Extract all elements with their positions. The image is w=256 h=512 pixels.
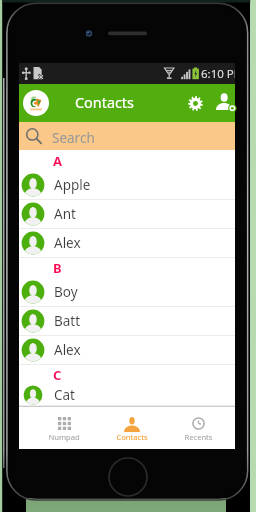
button[interactable]: Recents bbox=[165, 407, 232, 449]
button[interactable]: Numpad bbox=[30, 407, 98, 449]
staticText: Contacts bbox=[75, 93, 134, 113]
button[interactable]: App logo bbox=[23, 90, 49, 116]
button[interactable]: Settings bbox=[183, 91, 208, 116]
staticText: Contacts bbox=[116, 432, 148, 442]
staticText: Alex bbox=[54, 234, 81, 252]
button[interactable]: Alex bbox=[19, 336, 235, 365]
staticText: Ant bbox=[54, 205, 76, 223]
staticText: Numpad bbox=[48, 432, 80, 442]
button[interactable]: Ant bbox=[19, 200, 235, 229]
staticText: A bbox=[53, 152, 62, 170]
staticText: Apple bbox=[54, 176, 91, 194]
staticText: Search bbox=[52, 129, 95, 147]
staticText: C bbox=[53, 366, 62, 384]
button[interactable]: Batt bbox=[19, 307, 235, 336]
button[interactable]: Alex bbox=[19, 229, 235, 258]
button[interactable]: Apple bbox=[19, 171, 235, 200]
staticText: B bbox=[53, 259, 62, 277]
button[interactable]: Search bbox=[19, 122, 235, 150]
button[interactable]: Boy bbox=[19, 278, 235, 307]
staticText: Batt bbox=[54, 312, 81, 330]
button[interactable]: Contacts bbox=[98, 407, 165, 449]
staticText: Cat bbox=[54, 386, 75, 404]
staticText: Alex bbox=[54, 341, 81, 359]
button[interactable]: Cat bbox=[19, 385, 235, 406]
staticText: Boy bbox=[54, 283, 78, 301]
staticText: Recents bbox=[184, 432, 213, 442]
button[interactable]: Add contact bbox=[211, 91, 236, 116]
staticText: 6:10 PM bbox=[201, 66, 235, 82]
